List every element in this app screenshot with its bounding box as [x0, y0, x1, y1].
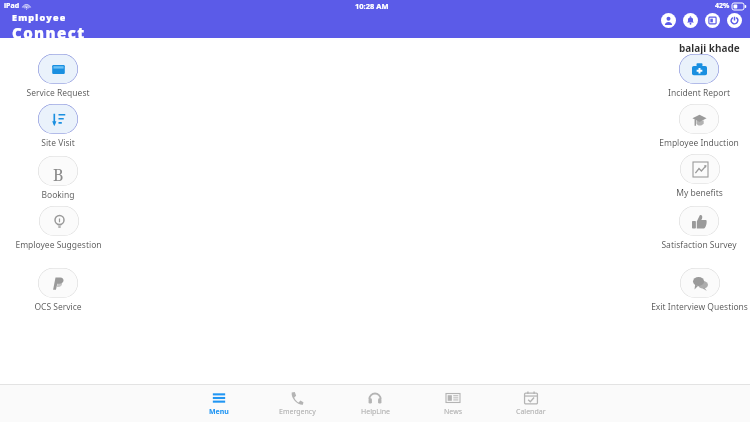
- staticText: 10:28 AM: [355, 1, 389, 11]
- button[interactable]: Menu: [180, 385, 258, 422]
- staticText: Employee Induction: [659, 137, 739, 149]
- button[interactable]: Employee Suggestion: [0, 206, 143, 252]
- staticText: Employee Suggestion: [15, 239, 102, 251]
- button[interactable]: HelpLine: [336, 385, 414, 422]
- button[interactable]: Satisfaction Survey: [614, 206, 750, 252]
- staticText: HelpLine: [361, 407, 390, 417]
- staticText: Incident Report: [668, 87, 730, 99]
- staticText: Menu: [209, 407, 229, 417]
- staticText: iPad: [4, 1, 20, 11]
- staticText: Employee: [12, 11, 67, 23]
- staticText: Emergency: [279, 407, 316, 417]
- button[interactable]: Booking: [0, 156, 143, 202]
- button[interactable]: Documents: [705, 13, 720, 28]
- staticText: Site Visit: [41, 137, 75, 149]
- staticText: B: [53, 164, 64, 186]
- staticText: Connect: [12, 23, 86, 38]
- button[interactable]: News: [414, 385, 492, 422]
- staticText: Calendar: [516, 407, 546, 417]
- button[interactable]: Site Visit: [0, 104, 143, 150]
- staticText: Satisfaction Survey: [661, 239, 737, 251]
- staticText: 42%: [715, 1, 730, 11]
- button[interactable]: Calendar: [492, 385, 570, 422]
- button[interactable]: OCS Service: [0, 268, 143, 314]
- button[interactable]: My benefits: [614, 154, 750, 200]
- button[interactable]: Notifications: [683, 13, 698, 28]
- button[interactable]: Profile: [661, 13, 676, 28]
- button[interactable]: Emergency: [258, 385, 336, 422]
- staticText: Service Request: [26, 87, 90, 99]
- button[interactable]: Exit Interview Questions: [614, 268, 750, 314]
- staticText: balaji khade: [679, 41, 740, 55]
- button[interactable]: Incident Report: [614, 54, 750, 100]
- button[interactable]: Employee Induction: [614, 104, 750, 150]
- button[interactable]: Logout: [727, 13, 742, 28]
- staticText: OCS Service: [34, 301, 82, 313]
- staticText: News: [444, 407, 462, 417]
- staticText: My benefits: [676, 187, 723, 199]
- staticText: Exit Interview Questions: [651, 301, 748, 313]
- button[interactable]: Service Request: [0, 54, 143, 100]
- staticText: Booking: [41, 189, 75, 201]
